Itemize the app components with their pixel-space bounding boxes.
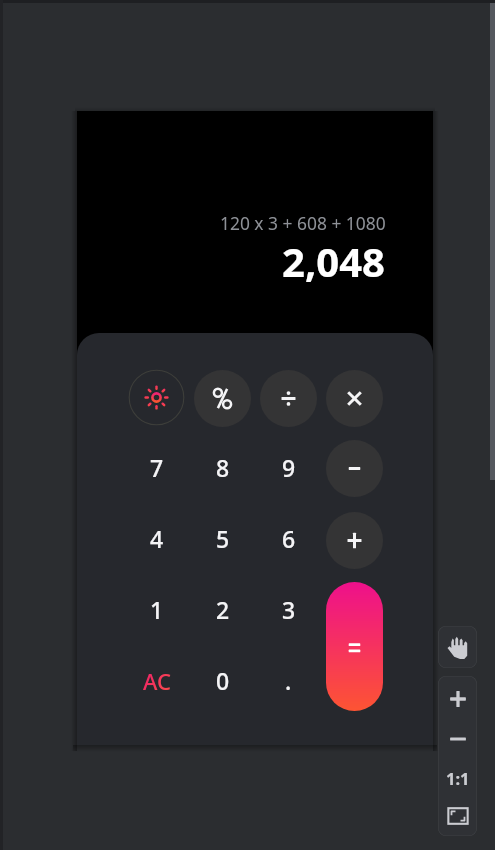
staticText: 5 bbox=[216, 523, 230, 554]
staticText: 1:1 bbox=[446, 767, 470, 789]
button[interactable]: Zoom out bbox=[438, 720, 477, 757]
staticText: 1 bbox=[150, 594, 164, 625]
staticText: 2 bbox=[216, 594, 230, 625]
staticText: 6 bbox=[282, 523, 296, 554]
staticText: 9 bbox=[282, 452, 296, 483]
staticText: 4 bbox=[150, 523, 164, 554]
button[interactable]: Minus bbox=[326, 440, 383, 497]
button[interactable]: Actual size bbox=[438, 760, 477, 797]
button[interactable]: Seven bbox=[128, 440, 185, 497]
button[interactable]: One bbox=[128, 582, 185, 639]
button[interactable]: Pan tool bbox=[438, 626, 477, 668]
staticText: 2,048 bbox=[282, 234, 385, 288]
button[interactable]: Three bbox=[260, 582, 317, 639]
staticText: 120 x 3 + 608 + 1080 bbox=[220, 211, 386, 235]
button[interactable]: Eight bbox=[194, 440, 251, 497]
staticText: AC bbox=[143, 666, 171, 696]
button[interactable]: Four bbox=[128, 511, 185, 568]
button[interactable]: Plus bbox=[326, 512, 383, 569]
button[interactable]: Zoom in bbox=[438, 680, 477, 717]
button[interactable]: Percent bbox=[194, 370, 251, 427]
staticText: 7 bbox=[150, 452, 164, 483]
button[interactable]: Decimal point bbox=[260, 653, 317, 710]
button[interactable]: All clear bbox=[128, 653, 185, 710]
button[interactable]: Fit to screen bbox=[438, 797, 477, 834]
staticText: 0 bbox=[216, 665, 230, 696]
button[interactable]: Theme bbox=[128, 369, 185, 426]
button[interactable]: Zero bbox=[194, 653, 251, 710]
button[interactable]: Six bbox=[260, 511, 317, 568]
button[interactable]: Nine bbox=[260, 440, 317, 497]
button[interactable]: Multiply bbox=[326, 370, 383, 427]
staticText: 3 bbox=[282, 594, 296, 625]
button[interactable]: Divide bbox=[260, 370, 317, 427]
staticText: 8 bbox=[216, 452, 230, 483]
button[interactable]: Two bbox=[194, 582, 251, 639]
button[interactable]: Equals bbox=[326, 582, 383, 711]
staticText: . bbox=[285, 665, 292, 696]
button[interactable]: Five bbox=[194, 511, 251, 568]
